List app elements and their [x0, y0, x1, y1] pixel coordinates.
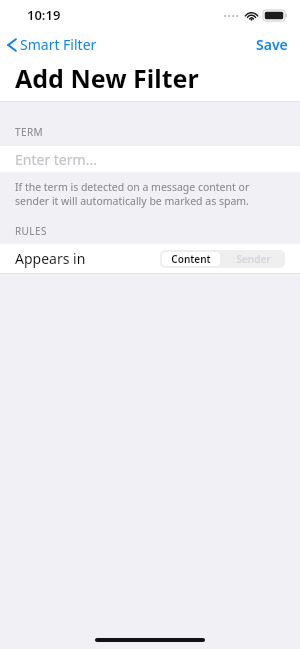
- button[interactable]: Sender: [222, 250, 285, 268]
- staticText: If the term is detected on a message con…: [15, 180, 282, 208]
- button[interactable]: Content: [162, 252, 220, 266]
- staticText: 10:19: [27, 6, 61, 24]
- staticText: Sender: [236, 252, 271, 266]
- staticText: RULES: [15, 224, 47, 238]
- button[interactable]: Smart Filter: [0, 33, 105, 56]
- staticText: Save: [256, 35, 288, 54]
- button[interactable]: Enter term...: [0, 146, 300, 172]
- staticText: Content: [171, 252, 211, 266]
- staticText: Enter term...: [15, 150, 97, 169]
- staticText: Appears in: [15, 249, 86, 268]
- staticText: Add New Filter: [15, 61, 199, 95]
- button[interactable]: Save: [246, 33, 300, 56]
- staticText: TERM: [15, 125, 44, 139]
- staticText: Smart Filter: [20, 35, 97, 54]
